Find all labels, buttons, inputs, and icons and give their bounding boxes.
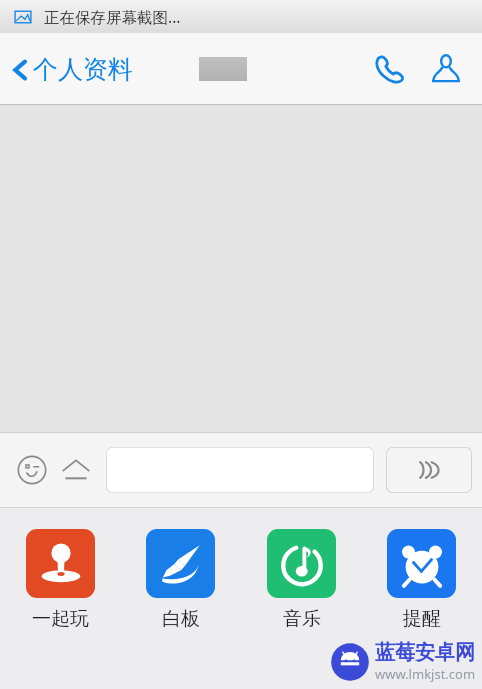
button[interactable]: Voice message bbox=[386, 447, 472, 493]
staticText: 提醒 bbox=[403, 607, 441, 631]
button[interactable]: 音乐 bbox=[257, 529, 346, 631]
button[interactable]: 提醒 bbox=[377, 529, 466, 631]
button[interactable]: 白板 bbox=[136, 529, 225, 631]
staticText: 蓝莓安卓网 bbox=[375, 640, 475, 665]
staticText: 个人资料 bbox=[33, 54, 133, 85]
button[interactable] bbox=[106, 447, 374, 493]
staticText: 白板 bbox=[162, 607, 200, 631]
button[interactable]: 个人资料 bbox=[0, 54, 141, 85]
button[interactable]: More bbox=[54, 448, 98, 492]
staticText: 一起玩 bbox=[32, 607, 89, 631]
button[interactable]: Emoji bbox=[10, 448, 54, 492]
staticText: 正在保存屏幕截图... bbox=[44, 6, 181, 27]
button[interactable]: 一起玩 bbox=[16, 529, 105, 631]
staticText: www.lmkjst.com bbox=[375, 665, 476, 683]
button[interactable]: Call bbox=[364, 43, 416, 95]
staticText: 音乐 bbox=[283, 607, 321, 631]
button[interactable]: Contact profile bbox=[420, 43, 472, 95]
